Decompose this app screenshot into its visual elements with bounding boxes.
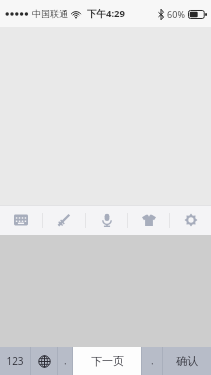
staticText: 下一页 xyxy=(91,354,124,368)
staticText: 下午4:29 xyxy=(87,7,125,20)
button[interactable]: Keyboard xyxy=(0,205,42,235)
button[interactable]: 123 xyxy=(0,347,30,375)
button[interactable]: ， xyxy=(142,347,162,375)
button[interactable]: ， xyxy=(58,347,72,375)
button[interactable]: 下一页 xyxy=(73,347,141,375)
button[interactable]: Voice input xyxy=(86,205,127,235)
button[interactable]: Handwriting xyxy=(43,205,85,235)
button[interactable]: Switch language xyxy=(31,347,57,375)
button[interactable]: Settings xyxy=(170,205,211,235)
staticText: 60% xyxy=(167,8,185,20)
button[interactable]: 确认 xyxy=(163,347,211,375)
staticText: 123 xyxy=(6,354,24,368)
staticText: 确认 xyxy=(176,354,198,368)
staticText: ， xyxy=(61,356,69,366)
staticText: 中国联通 xyxy=(32,8,68,19)
staticText: ， xyxy=(148,356,156,366)
button[interactable]: Theme xyxy=(128,205,169,235)
